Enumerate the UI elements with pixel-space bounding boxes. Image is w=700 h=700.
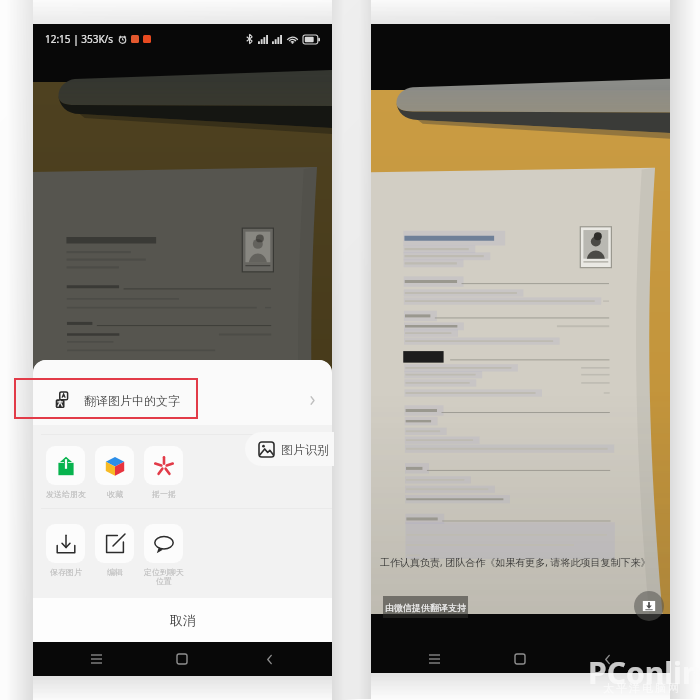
button[interactable]: 摇一摇 (139, 446, 188, 499)
staticText: PConline (588, 652, 700, 693)
button[interactable]: Home (165, 642, 199, 676)
button[interactable]: Home (503, 642, 537, 676)
staticText: 摇一摇 (152, 489, 176, 499)
staticText: 太平洋电脑网 (602, 681, 680, 695)
button[interactable]: 翻译图片中的文字 (33, 379, 332, 422)
staticText: 取消 (170, 612, 196, 628)
button[interactable]: 编辑 (90, 524, 139, 577)
staticText: 编辑 (107, 567, 123, 577)
staticText: 翻译图片中的文字 (84, 393, 180, 408)
button[interactable]: 图片识别 (245, 432, 334, 466)
button[interactable]: Recents (417, 642, 451, 676)
button[interactable]: Back (590, 642, 624, 676)
button[interactable]: 发送给朋友 (41, 446, 90, 499)
staticText: 工作认真负责, 团队合作《如果有更多, 请将此项目复制下来》 (380, 555, 651, 569)
staticText: 图片识别 (281, 442, 329, 457)
button[interactable]: 保存图片 (41, 524, 90, 577)
staticText: 保存图片 (50, 567, 82, 577)
staticText: 发送给朋友 (46, 489, 86, 499)
button[interactable]: Recents (79, 642, 113, 676)
staticText: 收藏 (107, 489, 123, 499)
button[interactable]: Download image (634, 591, 664, 621)
button[interactable]: Back (252, 642, 286, 676)
button[interactable]: 取消 (33, 598, 332, 642)
staticText: 定位到聊天 位置 (144, 567, 184, 587)
staticText: 由微信提供翻译支持 (385, 602, 466, 613)
button[interactable]: 收藏 (90, 446, 139, 499)
staticText: 12:15 | 353K/s (45, 32, 114, 46)
button[interactable]: 定位到聊天 位置 (139, 524, 188, 587)
